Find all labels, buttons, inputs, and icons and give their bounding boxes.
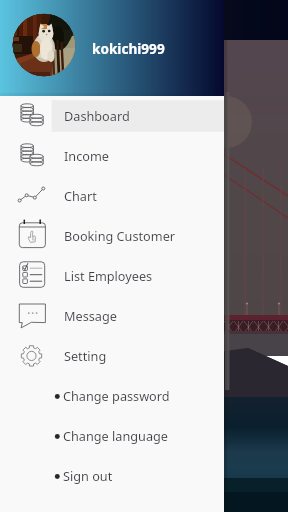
button[interactable]: List Employees bbox=[0, 257, 224, 297]
button[interactable]: Income bbox=[0, 137, 224, 177]
staticText: Change password bbox=[63, 387, 170, 404]
staticText: List Employees bbox=[64, 267, 153, 284]
button[interactable]: Chart bbox=[0, 177, 224, 217]
staticText: Booking Customer bbox=[64, 227, 176, 244]
button[interactable]: Dashboard bbox=[0, 97, 224, 137]
staticText: Setting bbox=[64, 347, 107, 364]
staticText: Chart bbox=[64, 187, 97, 204]
button[interactable]: Sign out bbox=[0, 457, 224, 497]
button[interactable]: Booking Customer bbox=[0, 217, 224, 257]
button[interactable]: Change language bbox=[0, 417, 224, 457]
button[interactable]: Profile kokichi999 bbox=[0, 0, 224, 96]
button[interactable]: Change password bbox=[0, 377, 224, 417]
staticText: Message bbox=[64, 307, 117, 324]
button[interactable]: Setting bbox=[0, 337, 224, 377]
staticText: kokichi999 bbox=[92, 39, 165, 58]
staticText: Dashboard bbox=[64, 107, 130, 124]
staticText: Change language bbox=[63, 427, 169, 444]
button[interactable]: Message bbox=[0, 297, 224, 337]
staticText: Sign out bbox=[63, 467, 113, 484]
staticText: Income bbox=[64, 147, 109, 164]
